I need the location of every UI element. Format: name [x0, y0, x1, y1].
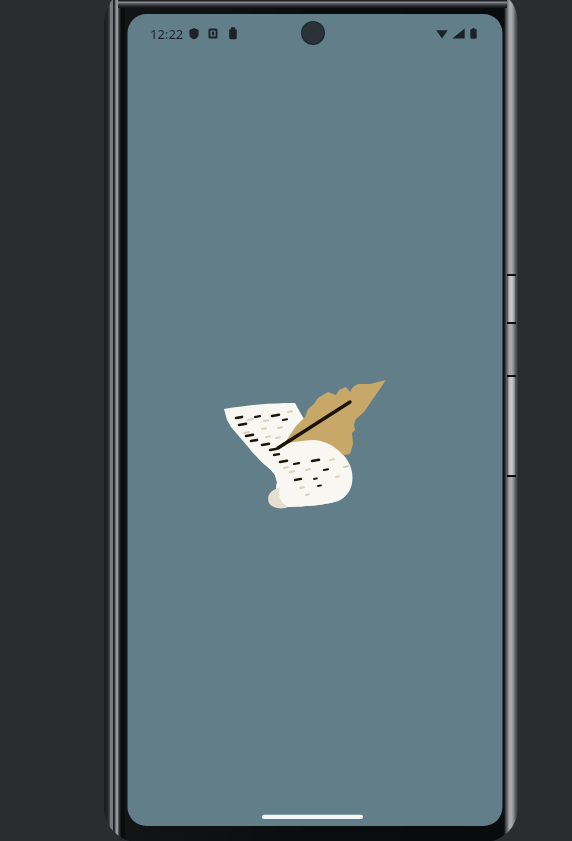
staticText: 12:22: [150, 25, 184, 43]
button[interactable]: Home: [256, 808, 369, 826]
button[interactable]: App logo: quill and scroll: [218, 375, 394, 515]
